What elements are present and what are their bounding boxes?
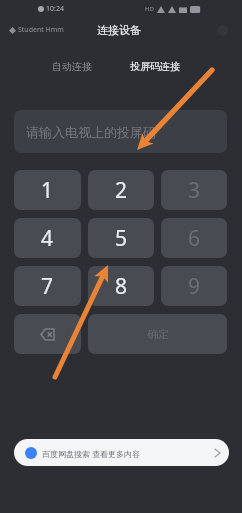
button[interactable]: 4 xyxy=(14,218,81,258)
staticText: 8 xyxy=(115,272,128,301)
button[interactable]: 3 xyxy=(161,170,227,210)
staticText: 5 xyxy=(115,224,128,253)
staticText: 连接设备 xyxy=(97,23,141,37)
button[interactable]: 8 xyxy=(88,266,154,306)
staticText: 4 xyxy=(41,224,54,253)
staticText: 6 xyxy=(188,224,201,253)
staticText: 2 xyxy=(115,176,128,205)
staticText: 投屏码连接 xyxy=(130,60,180,73)
staticText: 百度网盘搜索 查看更多内容 xyxy=(42,448,141,459)
button[interactable]: 5 xyxy=(88,218,154,258)
staticText: 确定 xyxy=(147,327,169,341)
button[interactable]: 自动连接 xyxy=(33,57,111,76)
staticText: 请输入电视上的投屏码 xyxy=(26,124,156,140)
button[interactable]: 百度网盘搜索 查看更多内容 xyxy=(14,439,229,466)
button[interactable]: More options xyxy=(216,24,229,37)
staticText: 9 xyxy=(188,272,201,301)
button[interactable]: 请输入电视上的投屏码 xyxy=(14,110,227,153)
staticText: HD xyxy=(145,5,154,13)
staticText: 3 xyxy=(188,176,201,205)
staticText: 7 xyxy=(41,272,54,301)
staticText: 1 xyxy=(41,176,54,205)
button[interactable]: 9 xyxy=(161,266,227,306)
staticText: 自动连接 xyxy=(52,60,92,73)
button[interactable]: 7 xyxy=(14,266,81,306)
button[interactable]: 1 xyxy=(14,170,81,210)
staticText: 10:24 xyxy=(46,4,64,14)
staticText: Student Hmm xyxy=(18,25,64,35)
button[interactable]: 确定 xyxy=(88,314,227,354)
button[interactable]: Account xyxy=(9,25,64,35)
button[interactable]: 6 xyxy=(161,218,227,258)
button[interactable]: Backspace xyxy=(14,314,81,354)
button[interactable]: 投屏码连接 xyxy=(111,57,199,76)
button[interactable]: 2 xyxy=(88,170,154,210)
